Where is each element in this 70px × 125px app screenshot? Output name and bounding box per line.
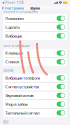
button[interactable]: Сигнал устройства <box>3 82 67 91</box>
button[interactable]: Вибрация телефона <box>3 74 67 82</box>
button[interactable]: Сделать <box>3 23 67 31</box>
staticText: Клавиши <box>5 50 22 56</box>
button[interactable]: Toggle <box>57 110 65 115</box>
staticText: Сделать <box>5 24 20 30</box>
staticText: Тактильный сигнал <box>5 110 39 115</box>
button[interactable]: Toggle <box>57 16 65 21</box>
staticText: 1:15 <box>17 1 24 4</box>
button[interactable]: Настройки <box>0 5 24 10</box>
staticText: ЗВУКИ <box>3 69 13 73</box>
button[interactable]: Клавиши <box>3 49 67 57</box>
button[interactable]: Toggle <box>57 50 65 56</box>
button[interactable]: Toggle <box>57 102 65 107</box>
staticText: Снимок <box>5 59 19 64</box>
staticText: Звуковой мотив <box>5 93 33 98</box>
staticText: ЗВУК И ВИБРАЦИЯ <box>3 44 30 48</box>
staticText: Упор в забои <box>5 101 27 107</box>
button[interactable]: Снимок <box>3 58 67 66</box>
button[interactable]: Позвонить <box>3 14 67 22</box>
staticText: Настройки <box>4 5 23 11</box>
staticText: Звуки <box>29 5 40 11</box>
button[interactable]: Toggle <box>57 33 65 38</box>
button[interactable]: Toggle <box>57 84 65 89</box>
staticText: iPhone <box>4 1 15 4</box>
staticText: ЕЩЁ <box>3 120 8 124</box>
button[interactable]: Back to iPhone <box>2 1 15 4</box>
button[interactable]: Упор в забои <box>3 100 67 108</box>
staticText: Вибрация телефона <box>5 75 40 80</box>
button[interactable]: Toggle <box>57 24 65 30</box>
staticText: ЗВОНКИ И ОПОВЕЩЕНИЯ <box>3 10 38 14</box>
button[interactable]: Тактильный сигнал <box>3 109 67 117</box>
staticText: Вибрация <box>5 33 22 38</box>
staticText: Сигнал устройства <box>5 84 39 89</box>
button[interactable]: Toggle <box>57 59 65 64</box>
button[interactable]: Toggle <box>57 93 65 98</box>
button[interactable]: Toggle <box>57 75 65 80</box>
button[interactable]: Звуковой мотив <box>3 91 67 100</box>
button[interactable]: Вибрация <box>3 32 67 40</box>
staticText: Позвонить <box>5 16 24 21</box>
